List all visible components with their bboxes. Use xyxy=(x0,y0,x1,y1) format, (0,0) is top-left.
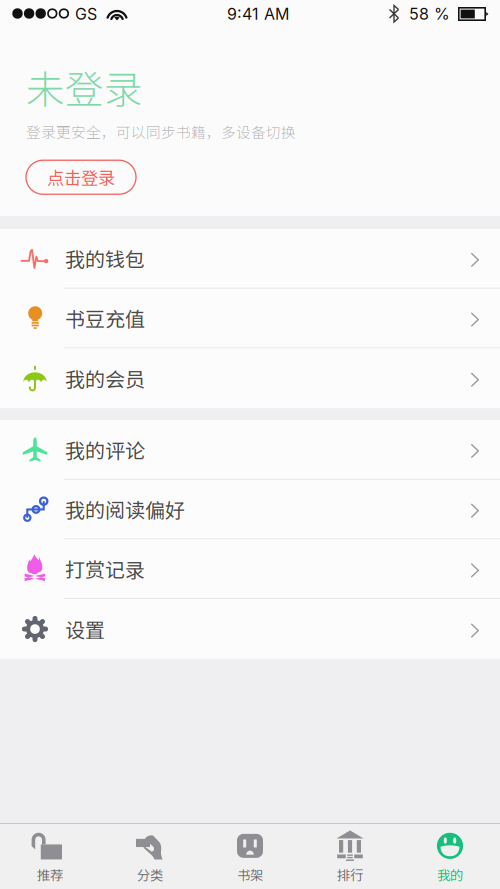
staticText: 推荐 xyxy=(37,865,63,884)
button[interactable]: 书架 xyxy=(200,824,300,889)
staticText: 书架 xyxy=(237,865,263,884)
staticText: 我的钱包 xyxy=(65,244,145,273)
staticText: 设置 xyxy=(65,615,105,644)
button[interactable]: 分类 xyxy=(100,824,200,889)
button[interactable]: 推荐 xyxy=(0,824,100,889)
button[interactable]: 点击登录 xyxy=(26,160,136,194)
staticText: 书豆充值 xyxy=(65,304,145,333)
staticText: 58 % xyxy=(409,4,450,24)
staticText: GS xyxy=(75,4,97,24)
staticText: 我的阅读偏好 xyxy=(65,495,185,524)
staticText: 排行 xyxy=(337,865,363,884)
button[interactable]: 我的评论 xyxy=(0,420,500,480)
staticText: 未登录 xyxy=(26,59,143,115)
staticText: 点击登录 xyxy=(47,165,115,190)
staticText: 我的评论 xyxy=(65,435,145,464)
button[interactable]: 我的钱包 xyxy=(0,229,500,289)
staticText: 我的 xyxy=(437,865,463,884)
staticText: 登录更安全，可以同步书籍，多设备切换 xyxy=(26,121,296,142)
button[interactable]: 我的 xyxy=(400,824,500,889)
button[interactable]: 打赏记录 xyxy=(0,539,500,599)
button[interactable]: 我的阅读偏好 xyxy=(0,480,500,539)
staticText: 打赏记录 xyxy=(65,554,145,583)
staticText: 分类 xyxy=(137,865,163,884)
button[interactable]: 排行 xyxy=(300,824,400,889)
staticText: 我的会员 xyxy=(65,364,145,393)
button[interactable]: 设置 xyxy=(0,599,500,659)
staticText: 9:41 AM xyxy=(227,4,289,24)
button[interactable]: 我的会员 xyxy=(0,348,500,408)
button[interactable]: 书豆充值 xyxy=(0,289,500,348)
